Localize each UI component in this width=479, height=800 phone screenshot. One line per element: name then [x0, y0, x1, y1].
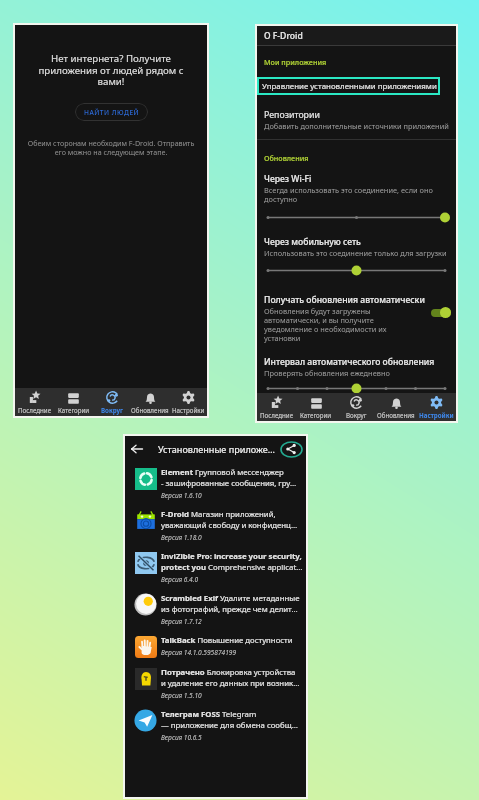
staticText: Обновления	[131, 406, 169, 414]
staticText: Добавить дополнительные источники прилож…	[264, 121, 449, 131]
staticText: Через Wi-Fi	[264, 173, 312, 185]
staticText: Версия 1.6.10	[161, 491, 202, 500]
button[interactable]: Управление установленными приложениями	[257, 77, 440, 95]
button[interactable]	[264, 384, 449, 393]
staticText: Через мобильную сеть	[264, 236, 361, 248]
button[interactable]: Share	[280, 436, 302, 462]
staticText: Интервал автоматического обновления	[264, 356, 435, 368]
staticText: Использовать это соединение только для з…	[264, 248, 447, 258]
staticText: О F-Droid	[264, 30, 303, 42]
button[interactable]: InviZible Pro: increase your security, p…	[125, 546, 306, 588]
staticText: Версия 1.18.0	[161, 533, 202, 542]
staticText: Настройки	[419, 411, 454, 419]
button[interactable]: Категории	[54, 388, 93, 416]
button[interactable]: Потрачено Блокировка устройства и удален…	[125, 662, 306, 704]
button[interactable]: F-Droid Магазин приложений, уважающий св…	[125, 504, 306, 546]
button[interactable]: TalkBack Повышение доступности	[125, 630, 306, 662]
button[interactable]: Получать обновления автоматически	[257, 294, 456, 343]
staticText: Обновления будут загружены автоматически…	[264, 306, 387, 343]
staticText: Версия 10.6.5	[161, 733, 202, 742]
staticText: Настройки	[172, 406, 205, 414]
staticText: Мои приложения	[264, 57, 327, 67]
button[interactable]: Настройки	[169, 388, 207, 416]
staticText: Проверять обновления ежедневно	[264, 368, 390, 378]
staticText: Потрачено Блокировка устройства и удален…	[161, 667, 300, 689]
button[interactable]: Обновления	[131, 388, 169, 416]
staticText: Версия 14.1.0.595874199	[161, 648, 237, 657]
staticText: Element Групповой мессенджер - зашифрова…	[161, 467, 297, 489]
staticText: InviZible Pro: increase your security, p…	[161, 551, 303, 573]
button[interactable]: Телеграм FOSS Telegram — приложение для …	[125, 704, 306, 746]
button[interactable]: Вокруг	[93, 388, 131, 416]
staticText: Версия 1.5.10	[161, 691, 202, 700]
staticText: Нет интернета? Получите приложения от лю…	[15, 52, 207, 88]
button[interactable]: Последние	[15, 388, 54, 416]
staticText: Получать обновления автоматически	[264, 294, 425, 306]
staticText: Категории	[58, 406, 90, 414]
button[interactable]: Категории	[296, 393, 336, 421]
button[interactable]: НАЙТИ ЛЮДЕЙ	[75, 103, 148, 121]
staticText: Телеграм FOSS Telegram — приложение для …	[161, 709, 298, 731]
button[interactable]: Back	[125, 436, 148, 462]
staticText: F-Droid Магазин приложений, уважающий св…	[161, 509, 298, 531]
button[interactable]	[264, 265, 449, 276]
button[interactable]: Последние	[257, 393, 296, 421]
staticText: TalkBack Повышение доступности	[161, 635, 293, 646]
staticText: Вокруг	[346, 411, 367, 419]
staticText: Последние	[260, 411, 294, 419]
button[interactable]: Вокруг	[336, 393, 376, 421]
staticText: Обновления	[377, 411, 415, 419]
button[interactable]: Обновления	[376, 393, 416, 421]
staticText: Scrambled Exif Удалите метаданные из фот…	[161, 593, 300, 615]
staticText: Вокруг	[101, 406, 123, 414]
staticText: Установленные приложе…	[158, 443, 275, 455]
staticText: Последние	[18, 406, 52, 414]
button[interactable]: Репозитории	[257, 109, 456, 131]
button[interactable]: Настройки	[416, 393, 456, 421]
button[interactable]: Scrambled Exif Удалите метаданные из фот…	[125, 588, 306, 630]
staticText: Версия 1.7.12	[161, 617, 202, 626]
staticText: Обновления	[264, 153, 309, 163]
button[interactable]: Element Групповой мессенджер - зашифрова…	[125, 462, 306, 504]
staticText: НАЙТИ ЛЮДЕЙ	[84, 108, 140, 117]
staticText: Репозитории	[264, 109, 320, 121]
staticText: Управление установленными приложениями	[262, 81, 437, 92]
staticText: Версия 6.4.0	[161, 575, 199, 584]
staticText: Обеим сторонам необходим F-Droid. Отправ…	[15, 138, 207, 158]
staticText: Всегда использовать это соединение, если…	[264, 185, 433, 204]
staticText: Категории	[300, 411, 332, 419]
button[interactable]	[264, 212, 449, 223]
